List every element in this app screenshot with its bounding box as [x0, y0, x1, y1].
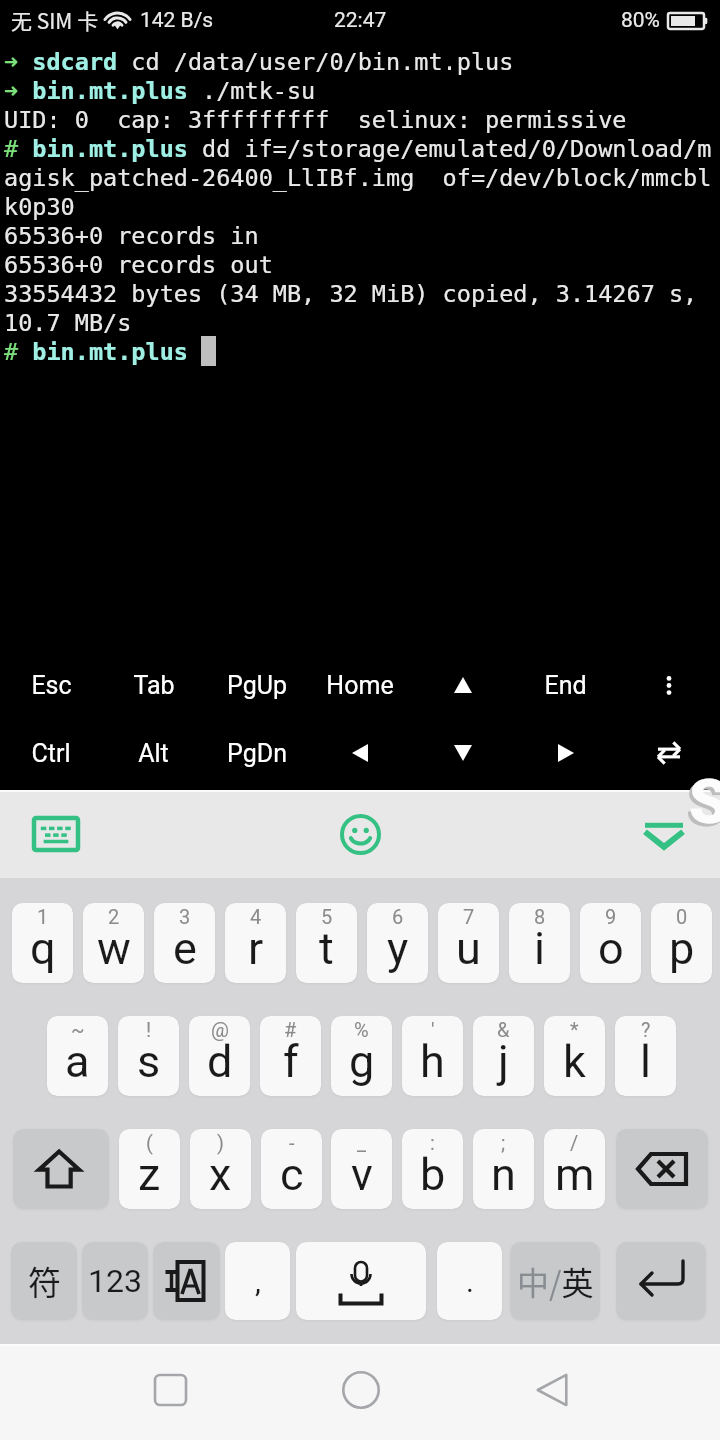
- button[interactable]: Switch: [617, 719, 720, 787]
- staticText: ?: [641, 1018, 651, 1041]
- staticText: d: [207, 1035, 233, 1088]
- button[interactable]: 123: [82, 1242, 148, 1320]
- button[interactable]: Right: [514, 719, 617, 787]
- button[interactable]: %: [331, 1016, 392, 1096]
- button[interactable]: 中/英: [510, 1242, 600, 1320]
- staticText: UID: 0 cap: 3fffffffff selinux: permissi…: [4, 106, 627, 133]
- button[interactable]: More options: [617, 651, 720, 719]
- staticText: 33554432 bytes (34 MB, 32 MiB) copied, 3…: [4, 280, 698, 307]
- staticText: y: [387, 922, 409, 975]
- button[interactable]: Backspace: [616, 1129, 708, 1209]
- staticText: k: [563, 1035, 586, 1088]
- button[interactable]: (: [119, 1129, 180, 1209]
- button[interactable]: /: [544, 1129, 605, 1209]
- staticText: 1: [37, 905, 49, 928]
- button[interactable]: Back: [522, 1360, 582, 1420]
- button[interactable]: @: [189, 1016, 250, 1096]
- staticText: -: [289, 1131, 295, 1154]
- button[interactable]: Esc: [0, 651, 102, 719]
- staticText: Ctrl: [31, 739, 71, 768]
- button[interactable]: 4: [225, 903, 286, 983]
- button[interactable]: 8: [509, 903, 570, 983]
- button[interactable]: 符: [11, 1242, 77, 1320]
- button[interactable]: End: [514, 651, 617, 719]
- button[interactable]: ?: [615, 1016, 676, 1096]
- button[interactable]: Tab: [102, 651, 205, 719]
- staticText: agisk_patched-26400_LlIBf.img of=/dev/bl…: [4, 164, 712, 191]
- staticText: l: [640, 1035, 651, 1088]
- button[interactable]: .: [437, 1242, 502, 1320]
- staticText: 无 SIM 卡: [11, 5, 99, 35]
- staticText: %: [354, 1018, 369, 1041]
- staticText: 中/英: [517, 1258, 594, 1304]
- button[interactable]: PgDn: [205, 719, 308, 787]
- staticText: c: [280, 1148, 304, 1201]
- button[interactable]: Ctrl: [0, 719, 102, 787]
- button[interactable]: 6: [367, 903, 428, 983]
- staticText: # bin.mt.plus dd if=/storage/emulated/0/…: [4, 135, 712, 162]
- button[interactable]: Up: [411, 651, 514, 719]
- staticText: k0p30: [4, 193, 75, 220]
- staticText: End: [544, 671, 587, 700]
- button[interactable]: Hide keyboard: [634, 804, 694, 864]
- staticText: 8: [534, 905, 546, 928]
- staticText: @: [211, 1018, 229, 1041]
- staticText: 65536+0 records in: [4, 222, 259, 249]
- staticText: !: [146, 1018, 152, 1041]
- button[interactable]: Enter: [616, 1242, 706, 1320]
- staticText: w: [97, 922, 131, 975]
- staticText: 10.7 MB/s: [4, 309, 132, 336]
- button[interactable]: 3: [154, 903, 215, 983]
- button[interactable]: PgUp: [205, 651, 308, 719]
- button[interactable]: 9: [580, 903, 641, 983]
- button[interactable]: _: [331, 1129, 392, 1209]
- staticText: # bin.mt.plus: [4, 338, 188, 365]
- staticText: o: [598, 922, 624, 975]
- staticText: PgDn: [227, 739, 287, 768]
- button[interactable]: ): [190, 1129, 251, 1209]
- button[interactable]: 0: [651, 903, 712, 983]
- button[interactable]: #: [260, 1016, 321, 1096]
- button[interactable]: 2: [83, 903, 144, 983]
- button[interactable]: ': [402, 1016, 463, 1096]
- staticText: 7: [463, 905, 475, 928]
- button[interactable]: Down: [411, 719, 514, 787]
- button[interactable]: :: [402, 1129, 463, 1209]
- button[interactable]: 5: [296, 903, 357, 983]
- button[interactable]: Space: [296, 1242, 426, 1320]
- button[interactable]: Home: [308, 651, 411, 719]
- button[interactable]: Recents: [140, 1360, 200, 1420]
- button[interactable]: ,: [225, 1242, 290, 1320]
- button[interactable]: Emoji: [330, 804, 390, 864]
- button[interactable]: ;: [473, 1129, 534, 1209]
- button[interactable]: Shift: [13, 1129, 109, 1209]
- staticText: t: [319, 922, 334, 975]
- staticText: S: [686, 768, 720, 841]
- staticText: S: [689, 765, 720, 838]
- staticText: (: [146, 1131, 153, 1154]
- staticText: f: [283, 1035, 299, 1088]
- staticText: Alt: [138, 739, 169, 768]
- button[interactable]: ~: [47, 1016, 108, 1096]
- staticText: ;: [501, 1131, 506, 1154]
- staticText: ): [217, 1131, 224, 1154]
- button[interactable]: &: [473, 1016, 534, 1096]
- button[interactable]: !: [118, 1016, 179, 1096]
- button[interactable]: 1: [12, 903, 73, 983]
- button[interactable]: Home: [331, 1360, 391, 1420]
- staticText: v: [351, 1148, 373, 1201]
- button[interactable]: Input language: [153, 1242, 220, 1320]
- button[interactable]: -: [261, 1129, 322, 1209]
- button[interactable]: Left: [308, 719, 411, 787]
- button[interactable]: 7: [438, 903, 499, 983]
- button[interactable]: Alt: [102, 719, 205, 787]
- staticText: n: [491, 1148, 516, 1201]
- button[interactable]: Keyboard: [21, 804, 90, 864]
- staticText: u: [456, 922, 481, 975]
- staticText: 4: [250, 905, 262, 928]
- staticText: ,: [255, 1264, 261, 1299]
- staticText: 80%: [621, 8, 660, 33]
- staticText: x: [209, 1148, 232, 1201]
- button[interactable]: *: [544, 1016, 605, 1096]
- staticText: ': [431, 1018, 435, 1041]
